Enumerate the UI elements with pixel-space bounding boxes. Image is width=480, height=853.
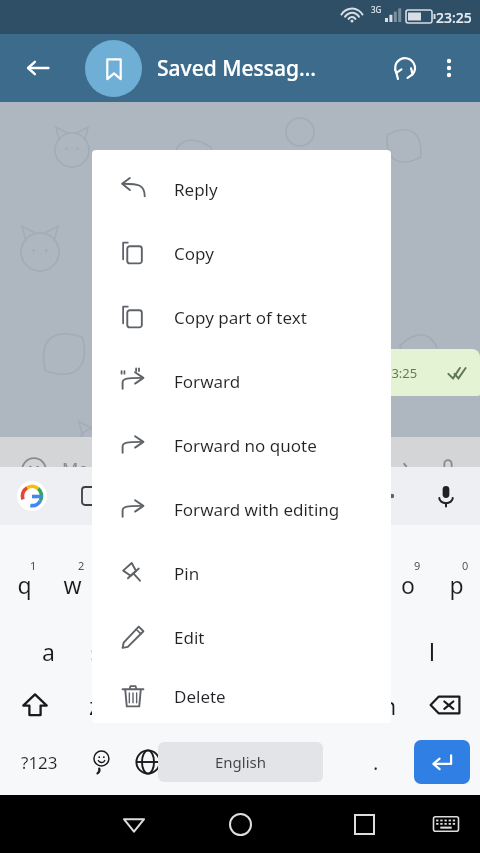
- button[interactable]: Saved Messages avatar: [85, 40, 142, 97]
- button[interactable]: Emoji: [12, 448, 56, 492]
- button[interactable]: Clipboard: [72, 476, 112, 516]
- button[interactable]: Delete: [92, 669, 391, 723]
- staticText: Forward: [174, 370, 241, 393]
- staticText: m: [361, 690, 410, 721]
- staticText: 2: [78, 558, 85, 573]
- staticText: o: [401, 569, 415, 600]
- button[interactable]: Pin: [92, 541, 391, 605]
- button[interactable]: Emoji and comma: [76, 737, 126, 787]
- staticText: Edit: [174, 626, 205, 649]
- button[interactable]: Back: [14, 44, 62, 92]
- button[interactable]: s: [72, 625, 120, 677]
- button[interactable]: Hide keyboard: [424, 802, 468, 846]
- button[interactable]: Backspace: [416, 677, 474, 733]
- button[interactable]: Forward: [92, 349, 391, 413]
- staticText: .: [373, 749, 379, 776]
- staticText: p: [449, 569, 464, 600]
- button[interactable]: Change language: [122, 736, 174, 788]
- button[interactable]: Copy part of text: [92, 285, 391, 349]
- button[interactable]: p: [432, 558, 480, 610]
- button[interactable]: Home: [216, 800, 264, 848]
- button[interactable]: English: [158, 742, 323, 782]
- button[interactable]: Enter: [414, 740, 470, 784]
- button[interactable]: t: [192, 558, 240, 610]
- button[interactable]: Attach: [378, 448, 422, 492]
- staticText: v: [216, 690, 265, 721]
- button[interactable]: f: [168, 625, 216, 677]
- staticText: Forward with editing: [174, 498, 340, 521]
- staticText: e: [114, 569, 127, 600]
- button[interactable]: ?123: [8, 737, 70, 787]
- button[interactable]: r: [144, 558, 192, 610]
- staticText: f: [188, 636, 196, 667]
- button[interactable]: Sync: [382, 45, 428, 91]
- button[interactable]: q: [0, 558, 48, 610]
- button[interactable]: Shift: [6, 677, 64, 733]
- staticText: d: [137, 636, 152, 667]
- staticText: Reply: [174, 178, 218, 201]
- button[interactable]: Forward no quote: [92, 413, 391, 477]
- button[interactable]: 23:25: [370, 349, 480, 396]
- button[interactable]: Voice message: [426, 448, 470, 492]
- staticText: 4: [174, 558, 181, 573]
- button[interactable]: Back: [110, 800, 158, 848]
- staticText: w: [63, 569, 82, 600]
- staticText: Pin: [174, 562, 200, 585]
- button[interactable]: d: [120, 625, 168, 677]
- staticText: Saved Messag…: [157, 54, 316, 83]
- staticText: Copy: [174, 242, 214, 265]
- staticText: a: [42, 636, 55, 667]
- staticText: Me: [62, 457, 89, 482]
- staticText: q: [17, 569, 32, 600]
- staticText: 23:25: [436, 8, 472, 27]
- button[interactable]: o: [384, 558, 432, 610]
- staticText: c: [167, 690, 216, 721]
- button[interactable]: .: [354, 740, 398, 784]
- button[interactable]: l: [408, 625, 456, 677]
- staticText: x: [119, 690, 168, 721]
- staticText: 9: [414, 558, 421, 573]
- staticText: z: [70, 690, 119, 721]
- button[interactable]: a: [24, 625, 72, 677]
- staticText: 23:25: [384, 364, 418, 382]
- staticText: Forward no quote: [174, 434, 317, 457]
- staticText: English: [215, 752, 267, 772]
- staticText: ?123: [21, 751, 58, 774]
- staticText: s: [90, 636, 102, 667]
- button[interactable]: Forward with editing: [92, 477, 391, 541]
- button[interactable]: k: [360, 625, 408, 677]
- button[interactable]: Recents: [340, 800, 388, 848]
- staticText: 3G: [371, 4, 382, 15]
- button[interactable]: Reply: [92, 157, 391, 221]
- button[interactable]: Edit: [92, 605, 391, 669]
- button[interactable]: e: [96, 558, 144, 610]
- button[interactable]: Voice input: [426, 476, 466, 516]
- button[interactable]: w: [48, 558, 96, 610]
- staticText: 3: [126, 558, 133, 573]
- button[interactable]: Copy: [92, 221, 391, 285]
- staticText: Copy part of text: [174, 306, 307, 329]
- button[interactable]: More options: [426, 45, 472, 91]
- button[interactable]: Google: [12, 476, 52, 516]
